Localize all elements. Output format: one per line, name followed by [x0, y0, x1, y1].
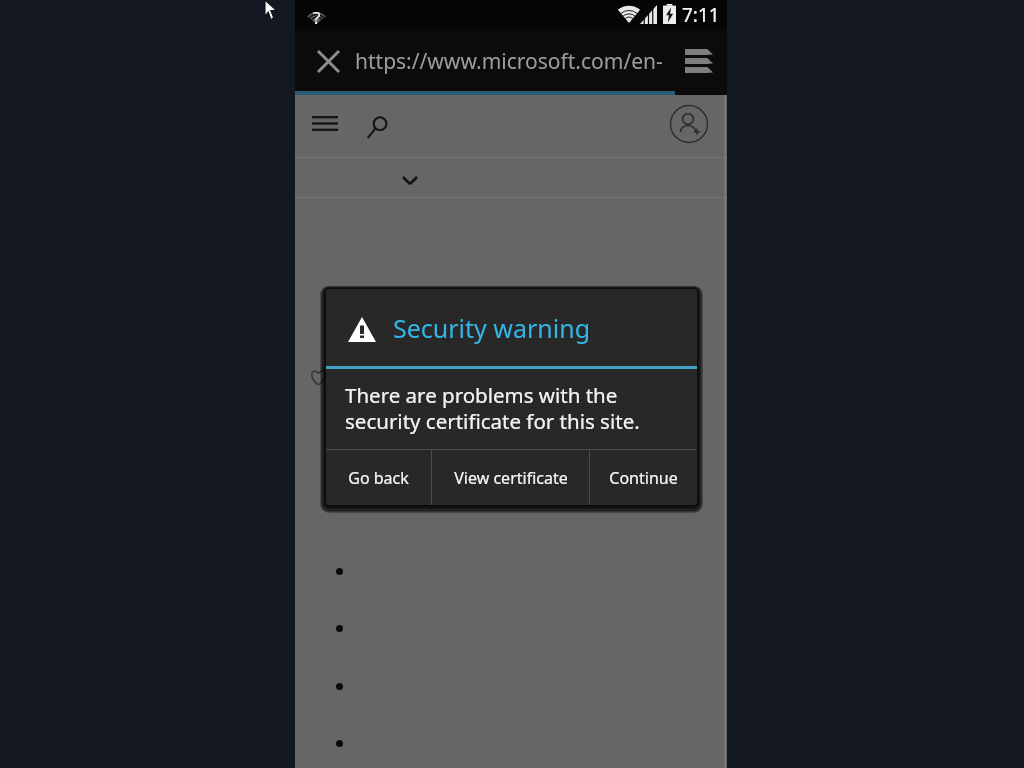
staticText: ? [313, 6, 321, 25]
button[interactable]: Continue [590, 450, 697, 505]
staticText: 7:11 [682, 2, 720, 28]
button[interactable]: Stop loading [306, 41, 351, 81]
button[interactable]: Menu [307, 101, 343, 145]
button[interactable]: Search [359, 106, 395, 150]
button[interactable]: Tabs [680, 43, 718, 79]
staticText: Continue [609, 467, 678, 489]
staticText: Security warning [393, 311, 591, 345]
staticText: There are problems with the security cer… [345, 381, 665, 435]
button[interactable]: Go back [326, 450, 431, 505]
staticText: View certificate [454, 467, 568, 489]
button[interactable]: View certificate [432, 450, 589, 505]
staticText: Go back [348, 467, 409, 489]
button[interactable]: Sign in [665, 100, 713, 148]
button[interactable]: Expand [392, 166, 428, 194]
staticText: https://www.microsoft.com/en- [355, 47, 663, 76]
